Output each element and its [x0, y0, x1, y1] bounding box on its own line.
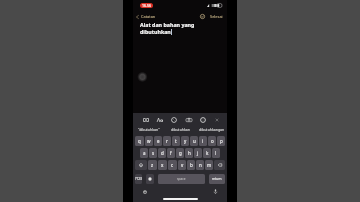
button[interactable]: Catatan — [135, 13, 157, 20]
button[interactable]: t — [172, 136, 180, 146]
staticText: c — [171, 162, 174, 168]
button[interactable]: Settings — [199, 116, 207, 124]
button[interactable]: z — [148, 160, 157, 170]
staticText: l — [215, 150, 217, 156]
staticText: r — [166, 138, 168, 144]
staticText: b — [190, 162, 193, 168]
staticText: return — [212, 177, 222, 181]
button[interactable]: space — [158, 174, 205, 184]
staticText: k — [206, 150, 209, 156]
button[interactable]: Sticker — [185, 116, 193, 124]
staticText: ?123 — [135, 177, 142, 181]
button[interactable]: r — [163, 136, 171, 146]
staticText: space — [177, 177, 186, 181]
button[interactable]: w — [145, 136, 153, 146]
staticText: dibutuhkangan — [199, 127, 225, 132]
button[interactable]: Clipboard — [142, 116, 150, 124]
staticText: e — [157, 138, 160, 144]
button[interactable]: Voice input — [212, 188, 219, 195]
button[interactable]: a — [140, 148, 148, 158]
button[interactable]: y — [181, 136, 189, 146]
staticText: p — [220, 138, 223, 144]
button[interactable]: v — [178, 160, 186, 170]
staticText: t — [175, 138, 177, 144]
staticText: a — [143, 150, 146, 156]
staticText: x — [161, 162, 164, 168]
button[interactable]: "dibutuhkan" — [133, 124, 165, 135]
button[interactable]: ?123 — [135, 174, 142, 184]
staticText: "dibutuhkan" — [138, 127, 160, 132]
button[interactable]: u — [190, 136, 198, 146]
staticText: u — [193, 138, 196, 144]
button[interactable]: b — [187, 160, 195, 170]
staticText: Catatan — [141, 14, 156, 19]
button[interactable]: h — [185, 148, 193, 158]
staticText: dibutuhkan — [140, 28, 171, 35]
button[interactable]: o — [208, 136, 216, 146]
staticText: s — [152, 150, 155, 156]
staticText: o — [211, 138, 214, 144]
button[interactable]: dibutuhkan — [165, 124, 196, 135]
button[interactable]: Close keyboard — [213, 116, 221, 124]
button[interactable]: Shift — [135, 160, 147, 170]
staticText: q — [138, 138, 141, 144]
button[interactable]: j — [194, 148, 202, 158]
button[interactable]: s — [149, 148, 157, 158]
staticText: Alat dan bahan yang — [140, 21, 195, 28]
button[interactable]: Emoji — [170, 116, 178, 124]
button[interactable]: return — [209, 174, 225, 184]
button[interactable]: Selesai — [199, 13, 224, 20]
button[interactable]: dibutuhkangan — [196, 124, 227, 135]
staticText: g — [179, 150, 182, 156]
staticText: 16.56 — [142, 3, 151, 8]
button[interactable]: Emoji — [146, 174, 154, 184]
button[interactable]: c — [168, 160, 177, 170]
button[interactable]: p — [217, 136, 225, 146]
staticText: f — [170, 150, 172, 156]
staticText: j — [197, 150, 199, 156]
button[interactable]: Backspace — [214, 160, 225, 170]
button[interactable]: x — [158, 160, 167, 170]
button[interactable]: f — [167, 148, 175, 158]
staticText: z — [151, 162, 154, 168]
staticText: dibutuhkan — [171, 127, 190, 132]
button[interactable]: m — [205, 160, 213, 170]
button[interactable]: q — [135, 136, 144, 146]
staticText: h — [188, 150, 191, 156]
button[interactable]: Emoji — [141, 188, 148, 195]
button[interactable]: Text editing — [156, 116, 164, 124]
button[interactable]: d — [158, 148, 166, 158]
staticText: v — [181, 162, 184, 168]
staticText: i — [202, 138, 204, 144]
staticText: w — [147, 138, 151, 144]
staticText: m — [207, 162, 212, 168]
staticText: y — [184, 138, 187, 144]
button[interactable]: g — [176, 148, 184, 158]
button[interactable]: n — [196, 160, 204, 170]
button[interactable]: e — [154, 136, 162, 146]
button[interactable]: k — [203, 148, 211, 158]
staticText: Selesai — [210, 14, 223, 19]
staticText: d — [161, 150, 164, 156]
button[interactable]: l — [212, 148, 220, 158]
button[interactable]: i — [199, 136, 207, 146]
staticText: n — [199, 162, 202, 168]
